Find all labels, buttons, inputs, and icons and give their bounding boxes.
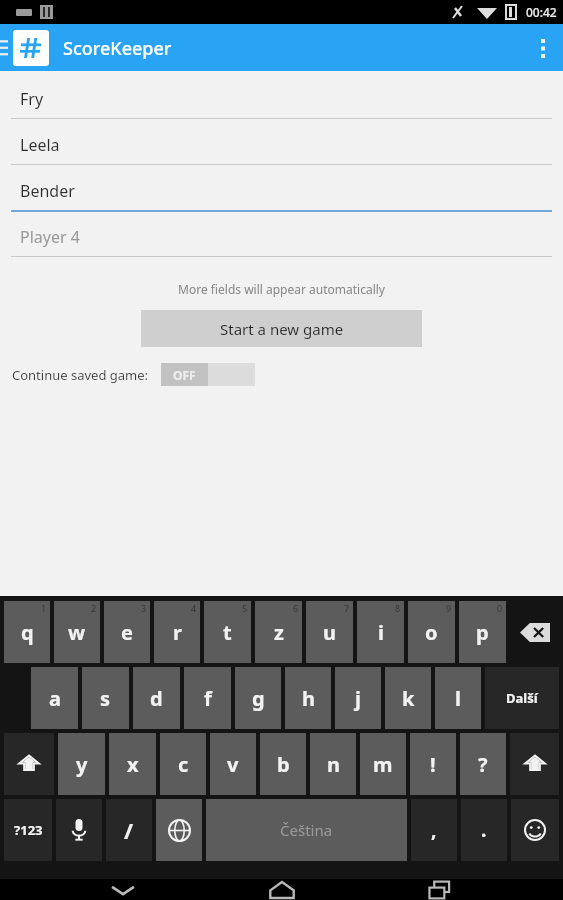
button[interactable]: d (133, 667, 180, 729)
staticText: Další (506, 689, 538, 707)
staticText: g (252, 685, 265, 712)
button[interactable]: n (310, 733, 356, 795)
staticText: 3 (141, 602, 147, 614)
staticText: 9 (446, 602, 452, 614)
button[interactable]: k (385, 667, 431, 729)
button[interactable]: s (82, 667, 129, 729)
button[interactable]: Player 4 (11, 217, 552, 263)
staticText: e (121, 619, 133, 646)
staticText: ! (430, 751, 436, 778)
staticText: t (223, 619, 232, 646)
staticText: 8 (395, 602, 401, 614)
button[interactable]: r (154, 601, 200, 663)
staticText: Leela (20, 134, 60, 156)
button[interactable]: Voice input (56, 799, 102, 861)
button[interactable]: OFF (161, 363, 255, 386)
button[interactable]: Backspace (510, 601, 559, 663)
button[interactable]: Open navigation drawer (0, 38, 10, 58)
button[interactable]: Change language (156, 799, 202, 861)
staticText: j (355, 685, 361, 712)
button[interactable]: c (160, 733, 206, 795)
staticText: w (68, 619, 86, 646)
button[interactable]: Hide keyboard (88, 879, 158, 900)
button[interactable]: Comma (411, 799, 457, 861)
staticText: 4 (191, 602, 197, 614)
button[interactable]: Shift (510, 733, 559, 795)
button[interactable]: Home (247, 879, 317, 900)
button[interactable]: h (285, 667, 331, 729)
staticText: d (150, 685, 163, 712)
staticText: c (178, 751, 189, 778)
staticText: n (327, 751, 340, 778)
button[interactable]: u (306, 601, 353, 663)
staticText: 5 (242, 602, 248, 614)
staticText: 2 (91, 602, 97, 614)
staticText: 7 (344, 602, 350, 614)
staticText: y (76, 751, 88, 778)
button[interactable]: l (435, 667, 481, 729)
staticText: x (127, 751, 139, 778)
button[interactable]: ! (410, 733, 456, 795)
staticText: v (227, 751, 239, 778)
staticText: Continue saved game: (12, 366, 149, 384)
button[interactable]: Shift (4, 733, 54, 795)
staticText: a (49, 685, 61, 712)
button[interactable]: Čeština (206, 799, 407, 861)
button[interactable]: v (210, 733, 256, 795)
staticText: Start a new game (220, 319, 344, 339)
staticText: 00:42 (526, 4, 557, 20)
button[interactable]: Slash (106, 799, 152, 861)
button[interactable]: Start a new game (141, 310, 422, 347)
button[interactable]: Bender (11, 171, 552, 217)
button[interactable]: y (58, 733, 105, 795)
button[interactable]: a (31, 667, 78, 729)
button[interactable]: Symbols (4, 799, 52, 861)
button[interactable]: t (204, 601, 251, 663)
button[interactable]: w (54, 601, 100, 663)
staticText: q (21, 619, 34, 646)
staticText: / (124, 815, 134, 845)
button[interactable]: j (335, 667, 381, 729)
staticText: Čeština (280, 820, 333, 840)
button[interactable]: b (260, 733, 306, 795)
button[interactable]: Emoji (511, 799, 559, 861)
staticText: f (204, 685, 212, 712)
staticText: r (173, 619, 182, 646)
button[interactable]: More options (523, 28, 563, 68)
staticText: i (378, 619, 384, 646)
staticText: m (373, 751, 393, 778)
button[interactable]: i (357, 601, 404, 663)
button[interactable]: Leela (11, 125, 552, 171)
button[interactable]: Další (485, 667, 559, 729)
staticText: 6 (293, 602, 299, 614)
staticText: z (274, 619, 284, 646)
staticText: ? (478, 751, 488, 778)
button[interactable]: x (109, 733, 156, 795)
staticText: h (302, 685, 315, 712)
staticText: Player 4 (20, 226, 80, 248)
staticText: OFF (173, 367, 196, 383)
button[interactable]: Recent apps (405, 879, 475, 900)
button[interactable]: m (360, 733, 406, 795)
button[interactable]: o (408, 601, 455, 663)
button[interactable]: e (104, 601, 150, 663)
staticText: , (431, 817, 437, 843)
button[interactable]: z (255, 601, 302, 663)
button[interactable]: ? (460, 733, 506, 795)
staticText: l (455, 685, 461, 712)
staticText: p (476, 619, 489, 646)
button[interactable]: p (459, 601, 506, 663)
staticText: o (425, 619, 438, 646)
button[interactable]: q (4, 601, 50, 663)
staticText: u (323, 619, 336, 646)
staticText: Bender (20, 180, 75, 202)
staticText: ?123 (14, 821, 43, 839)
button[interactable]: f (184, 667, 231, 729)
button[interactable]: Fry (11, 79, 552, 125)
staticText: More fields will appear automatically (0, 281, 563, 297)
staticText: b (277, 751, 290, 778)
staticText: 1 (41, 602, 47, 614)
button[interactable]: Period (461, 799, 507, 861)
button[interactable]: g (235, 667, 281, 729)
staticText: k (402, 685, 415, 712)
